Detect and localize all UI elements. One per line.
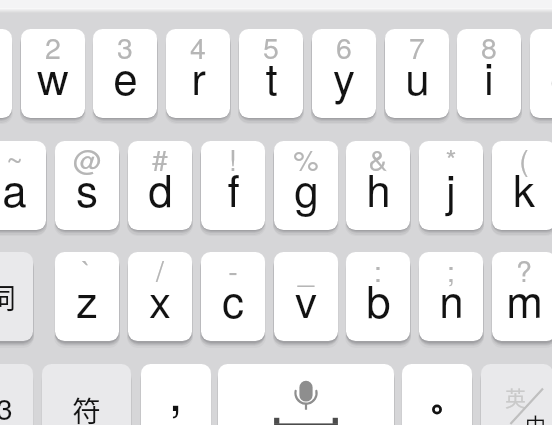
- button[interactable]: #: [128, 141, 192, 230]
- staticText: 5: [263, 29, 279, 67]
- staticText: 词: [0, 276, 16, 317]
- button[interactable]: &: [346, 141, 410, 230]
- staticText: j: [446, 156, 456, 219]
- staticText: o: [550, 44, 552, 107]
- staticText: 中: [525, 409, 546, 425]
- button[interactable]: /: [128, 252, 192, 341]
- staticText: 7: [409, 29, 425, 67]
- staticText: k: [513, 156, 535, 219]
- button[interactable]: 7: [385, 29, 449, 118]
- staticText: u: [405, 44, 430, 107]
- button[interactable]: ?: [492, 252, 552, 341]
- staticText: e: [113, 44, 138, 107]
- button[interactable]: Space: [218, 364, 394, 425]
- staticText: 123: [0, 387, 13, 425]
- staticText: ?: [516, 252, 532, 290]
- staticText: v: [295, 267, 317, 330]
- staticText: #: [152, 141, 168, 179]
- staticText: %: [293, 141, 319, 179]
- staticText: 符: [72, 389, 101, 425]
- button[interactable]: 5: [239, 29, 303, 118]
- button[interactable]: Numbers: [0, 364, 33, 425]
- staticText: b: [366, 267, 391, 330]
- button[interactable]: !: [201, 141, 265, 230]
- staticText: i: [484, 44, 494, 107]
- button[interactable]: 2: [21, 29, 85, 118]
- staticText: /: [156, 252, 164, 290]
- button[interactable]: ;: [419, 252, 483, 341]
- staticText: y: [333, 44, 355, 107]
- staticText: 8: [481, 29, 497, 67]
- staticText: z: [76, 267, 98, 330]
- staticText: m: [506, 267, 543, 330]
- button[interactable]: (: [492, 141, 552, 230]
- button[interactable]: Switch input language: [481, 364, 552, 425]
- button[interactable]: Period: [402, 364, 472, 425]
- button[interactable]: ~: [0, 141, 46, 230]
- staticText: ;: [447, 252, 455, 290]
- staticText: g: [294, 156, 319, 219]
- button[interactable]: _: [274, 252, 338, 341]
- staticText: @: [73, 141, 102, 179]
- staticText: 2: [45, 29, 61, 67]
- staticText: a: [2, 156, 27, 219]
- staticText: 英: [505, 382, 526, 412]
- button[interactable]: 6: [312, 29, 376, 118]
- staticText: ,: [168, 364, 183, 425]
- staticText: ~: [6, 141, 23, 179]
- staticText: n: [439, 267, 464, 330]
- staticText: -: [228, 252, 238, 290]
- button[interactable]: 8: [457, 29, 521, 118]
- staticText: _: [298, 252, 314, 290]
- button[interactable]: `: [55, 252, 119, 341]
- staticText: `: [82, 252, 92, 290]
- button[interactable]: %: [274, 141, 338, 230]
- button[interactable]: Word mode: [0, 252, 33, 341]
- staticText: s: [76, 156, 98, 219]
- button[interactable]: 1: [0, 29, 12, 118]
- staticText: *: [445, 141, 457, 179]
- staticText: &: [368, 141, 388, 179]
- staticText: c: [222, 267, 244, 330]
- button[interactable]: Symbols: [42, 364, 131, 425]
- button[interactable]: Comma: [141, 364, 211, 425]
- button[interactable]: 9: [530, 29, 552, 118]
- staticText: t: [265, 44, 278, 107]
- staticText: h: [366, 156, 391, 219]
- button[interactable]: 4: [166, 29, 230, 118]
- staticText: r: [191, 44, 206, 107]
- staticText: x: [149, 267, 171, 330]
- staticText: 4: [190, 29, 206, 67]
- staticText: :: [374, 252, 382, 290]
- staticText: w: [37, 44, 69, 107]
- button[interactable]: -: [201, 252, 265, 341]
- button[interactable]: *: [419, 141, 483, 230]
- staticText: (: [519, 141, 529, 179]
- button[interactable]: @: [55, 141, 119, 230]
- staticText: 3: [117, 29, 133, 67]
- staticText: 6: [336, 29, 352, 67]
- button[interactable]: 3: [93, 29, 157, 118]
- staticText: d: [148, 156, 173, 219]
- staticText: !: [229, 141, 237, 179]
- staticText: f: [227, 156, 240, 219]
- button[interactable]: :: [346, 252, 410, 341]
